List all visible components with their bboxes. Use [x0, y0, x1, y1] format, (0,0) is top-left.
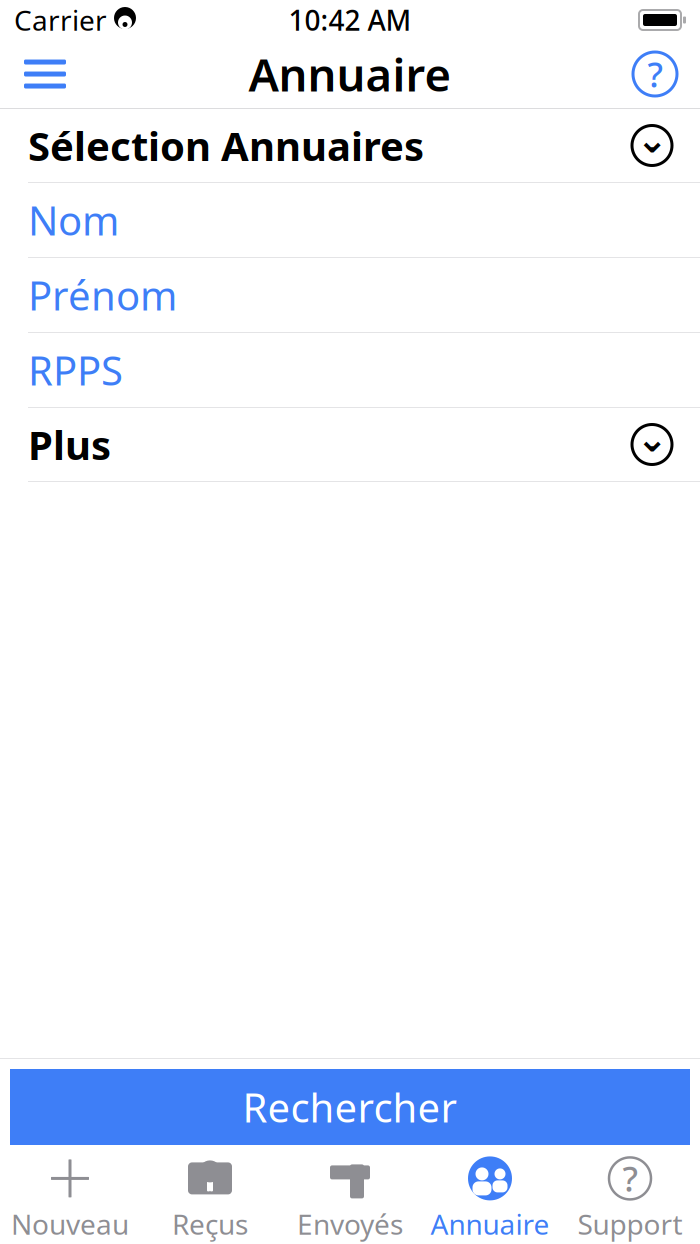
staticText: Annuaire [430, 1205, 549, 1243]
button[interactable]: Aide [620, 43, 690, 105]
button[interactable]: Sélection Annuaires [0, 109, 700, 183]
staticText: ⌄ [636, 417, 667, 460]
staticText: Carrier [14, 1, 107, 39]
staticText: ? [647, 51, 662, 97]
button[interactable]: Menu [10, 43, 80, 105]
staticText: Annuaire [248, 44, 451, 104]
staticText: Prénom [28, 268, 177, 321]
staticText: Sélection Annuaires [28, 119, 424, 172]
staticText: ⌄ [636, 118, 667, 161]
staticText: Nom [28, 193, 119, 246]
button[interactable]: RPPS [0, 333, 700, 408]
staticText: Reçus [172, 1205, 248, 1243]
staticText: RPPS [28, 343, 123, 396]
staticText: Plus [28, 418, 111, 471]
staticText: Envoyés [297, 1205, 403, 1243]
button[interactable]: Reçus [140, 1149, 280, 1244]
button[interactable]: Prénom [0, 258, 700, 333]
staticText: ? [622, 1155, 637, 1201]
button[interactable]: Annuaire [420, 1149, 560, 1244]
button[interactable]: Rechercher [10, 1069, 690, 1145]
button[interactable]: Nouveau [0, 1149, 140, 1244]
staticText: Support [577, 1205, 682, 1243]
staticText: Nouveau [11, 1205, 129, 1243]
button[interactable]: Nom [0, 183, 700, 258]
button[interactable]: ? [560, 1149, 700, 1244]
button[interactable]: Plus [0, 408, 700, 482]
button[interactable]: Envoyés [280, 1149, 420, 1244]
staticText: Rechercher [242, 1080, 457, 1133]
staticText: 10:42 AM [288, 1, 411, 39]
